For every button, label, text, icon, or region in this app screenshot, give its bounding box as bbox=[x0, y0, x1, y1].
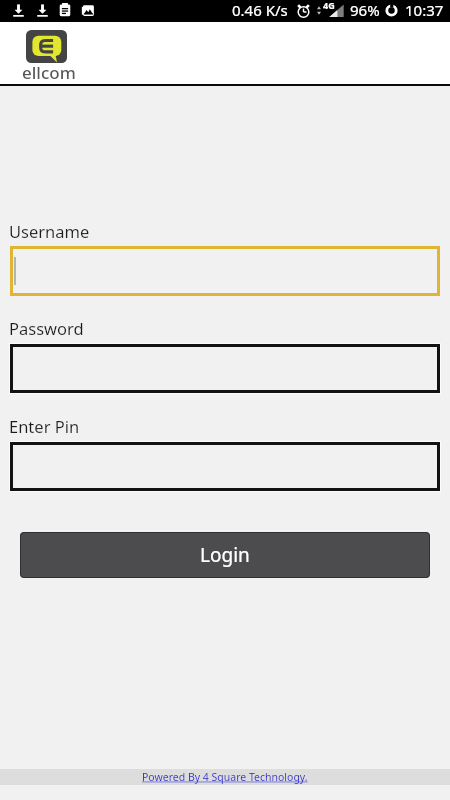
button[interactable]: Powered By 4 Square Technology. bbox=[0, 769, 450, 785]
staticText: Enter Pin bbox=[9, 415, 80, 437]
staticText: Username bbox=[9, 220, 90, 242]
button[interactable]: Enter Pin input bbox=[10, 442, 440, 491]
staticText: Login bbox=[200, 542, 250, 568]
staticText: 96% bbox=[350, 0, 380, 20]
staticText: Powered By 4 Square Technology. bbox=[142, 770, 308, 784]
staticText: 0.46 K/s bbox=[232, 0, 288, 20]
button[interactable]: Password input bbox=[10, 344, 440, 393]
button[interactable]: Username input bbox=[10, 246, 440, 296]
button[interactable]: Login bbox=[20, 532, 430, 578]
staticText: ellcom bbox=[22, 61, 76, 84]
staticText: Password bbox=[9, 317, 84, 339]
staticText: 4G bbox=[323, 0, 335, 11]
button[interactable]: ellcom logo bbox=[26, 30, 67, 63]
staticText: 10:37 bbox=[405, 0, 444, 20]
